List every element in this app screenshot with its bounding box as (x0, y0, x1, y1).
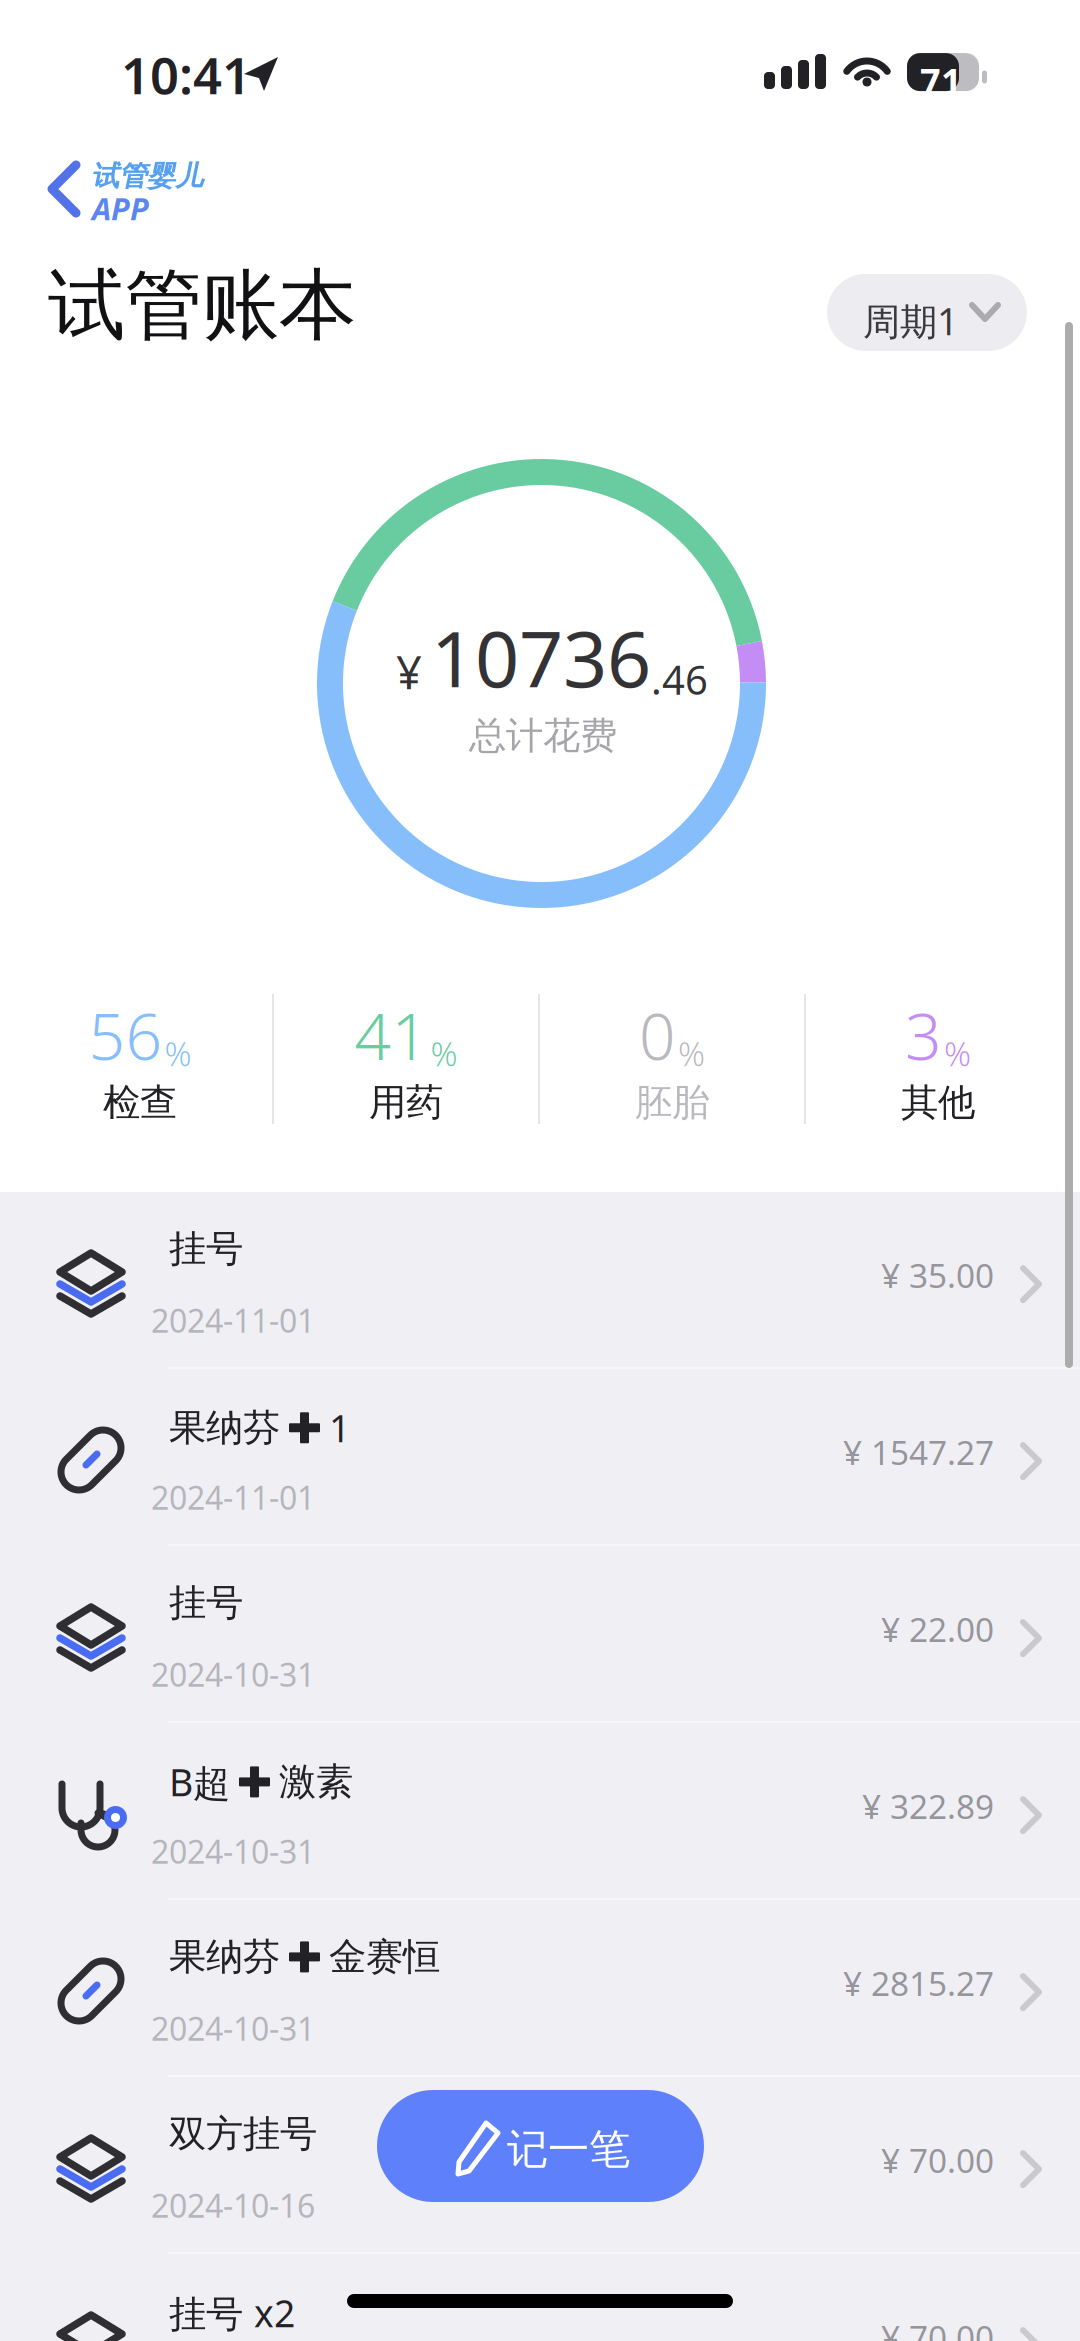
staticText: B超 (169, 1757, 230, 1807)
staticText: 用药 (369, 1080, 443, 1125)
staticText: 3 (905, 993, 942, 1078)
staticText: 双方挂号 (169, 2111, 317, 2157)
staticText: 10736 (431, 606, 651, 709)
staticText: 挂号 (169, 1226, 243, 1272)
button[interactable]: 记一笔 (377, 2090, 704, 2202)
staticText: 2024-10-31 (151, 1830, 315, 1872)
staticText: 71 (920, 57, 962, 105)
staticText: 金赛恒 (329, 1934, 440, 1980)
staticText: 果纳芬 (169, 1934, 280, 1980)
staticText: 41 (354, 993, 428, 1078)
staticText: 2024-11-01 (151, 1299, 315, 1341)
staticText: 1 (329, 1403, 350, 1453)
staticText: ¥ (396, 641, 422, 702)
staticText: ¥ 1547.27 (843, 1430, 994, 1474)
staticText: 试管婴儿 (91, 159, 203, 193)
staticText: 胚胎 (635, 1080, 709, 1125)
staticText: 周期1 (863, 296, 958, 346)
staticText: APP (92, 188, 149, 229)
staticText: 记一笔 (507, 2124, 630, 2175)
staticText: ¥ 22.00 (881, 1607, 994, 1651)
button[interactable]: 果纳芬 (0, 1369, 1080, 1544)
staticText: % (678, 1031, 705, 1076)
staticText: ¥ 35.00 (881, 1253, 994, 1297)
staticText: ¥ 322.89 (862, 1784, 994, 1828)
staticText: 2024-11-01 (151, 1476, 315, 1518)
staticText: .46 (651, 653, 708, 706)
staticText: 2024-10-16 (151, 2184, 315, 2226)
button[interactable]: 周期1 (827, 274, 1027, 351)
staticText: 试管账本 (48, 258, 356, 353)
button[interactable]: 双方挂号 (0, 2077, 1080, 2252)
staticText: 挂号 x2 (169, 2288, 295, 2338)
button[interactable]: 挂号 x2 (0, 2254, 1080, 2341)
staticText: 激素 (279, 1759, 353, 1805)
staticText: % (164, 1031, 191, 1076)
staticText: 2024-10-31 (151, 2007, 315, 2049)
staticText: ¥ 70.00 (881, 2315, 994, 2341)
button[interactable]: 果纳芬 (0, 1900, 1080, 2075)
staticText: 其他 (901, 1080, 975, 1125)
staticText: ¥ 70.00 (881, 2138, 994, 2182)
staticText: % (430, 1031, 457, 1076)
staticText: 果纳芬 (169, 1405, 280, 1451)
button[interactable]: 挂号 (0, 1546, 1080, 1721)
staticText: 挂号 (169, 1580, 243, 1626)
button[interactable]: 挂号 (0, 1192, 1080, 1367)
staticText: 总计花费 (469, 713, 617, 759)
staticText: 10:41 (121, 41, 251, 108)
staticText: 2024-10-31 (151, 1653, 315, 1695)
button[interactable]: 返回 (46, 158, 246, 228)
staticText: 0 (639, 993, 676, 1078)
staticText: 检查 (103, 1080, 177, 1125)
staticText: 56 (88, 993, 162, 1078)
staticText: ¥ 2815.27 (843, 1961, 994, 2005)
button[interactable]: B超 (0, 1723, 1080, 1898)
staticText: % (944, 1031, 971, 1076)
